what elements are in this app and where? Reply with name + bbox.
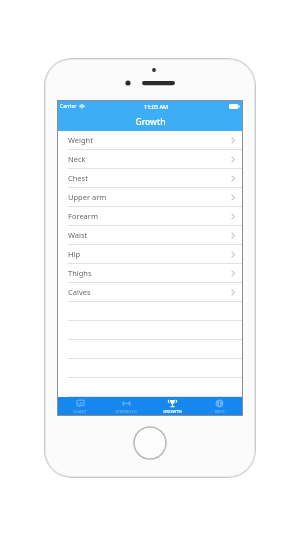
staticText: Weight [68, 135, 93, 145]
staticText: Hip [68, 249, 81, 259]
button[interactable]: Home [133, 426, 167, 460]
button[interactable]: Neck [57, 150, 243, 169]
staticText: Upper arm [68, 192, 107, 202]
button[interactable]: Thighs [57, 264, 243, 283]
staticText: Thighs [68, 268, 92, 278]
staticText: 11:05 AM [144, 103, 169, 110]
staticText: Calves [68, 287, 91, 297]
staticText: CHART [73, 409, 87, 415]
button[interactable]: STRENGTH [103, 397, 149, 416]
button[interactable]: INFO [196, 397, 243, 416]
staticText: Neck [68, 154, 86, 164]
button[interactable]: CHART [57, 397, 103, 416]
staticText: Growth [135, 116, 166, 128]
staticText: STRENGTH [115, 409, 137, 415]
button[interactable]: Calves [57, 283, 243, 302]
button[interactable]: Forearm [57, 207, 243, 226]
staticText: Carrier [60, 103, 77, 110]
button[interactable]: Upper arm [57, 188, 243, 207]
staticText: Waist [68, 230, 88, 240]
staticText: INFO [214, 409, 225, 415]
button[interactable]: Chest [57, 169, 243, 188]
button[interactable]: Weight [57, 131, 243, 150]
button[interactable]: GROWTH [149, 397, 196, 416]
staticText: GROWTH [163, 409, 182, 415]
button[interactable]: Waist [57, 226, 243, 245]
staticText: Forearm [68, 211, 98, 221]
staticText: Chest [68, 173, 88, 183]
button[interactable]: Hip [57, 245, 243, 264]
